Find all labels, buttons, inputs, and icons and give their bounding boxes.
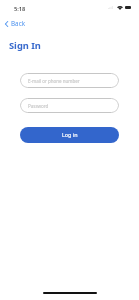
staticText: 5:18 xyxy=(14,5,26,13)
other: Wi-Fi xyxy=(117,6,123,10)
other: Battery xyxy=(125,6,131,9)
staticText: Sign In xyxy=(9,39,41,52)
staticText: Back xyxy=(11,19,26,28)
button[interactable]: E-mail or phone number xyxy=(20,73,119,88)
staticText: Log in xyxy=(62,131,78,138)
button[interactable]: Back xyxy=(4,18,27,29)
button[interactable]: Log in xyxy=(20,127,119,143)
staticText: E-mail or phone number xyxy=(28,78,80,84)
staticText: Password xyxy=(28,103,49,109)
button[interactable]: Password xyxy=(20,98,119,113)
